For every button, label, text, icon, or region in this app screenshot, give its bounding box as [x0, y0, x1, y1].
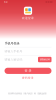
staticText: 获取验证码 [40, 58, 50, 61]
staticText: 请输入手机号 [4, 49, 22, 53]
button[interactable]: 登 录 [4, 68, 51, 74]
staticText: 登录即代表同意《用户协议》和《隐私政策》 [8, 92, 48, 95]
staticText: 登 录 [24, 69, 31, 73]
staticText: 请输入验证码 [4, 58, 22, 61]
staticText: 密码登录 [22, 76, 34, 79]
staticText: 9:41 [3, 0, 7, 4]
staticText: 手机号登录 [4, 41, 19, 45]
staticText: 欢迎登录 [22, 16, 34, 20]
button[interactable]: 获取验证码 [38, 57, 51, 62]
button[interactable]: 密码登录 [22, 76, 34, 79]
